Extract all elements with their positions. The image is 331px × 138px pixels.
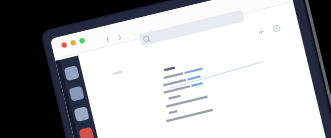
- button[interactable]: Tablet showing a browser window: [0, 0, 331, 138]
